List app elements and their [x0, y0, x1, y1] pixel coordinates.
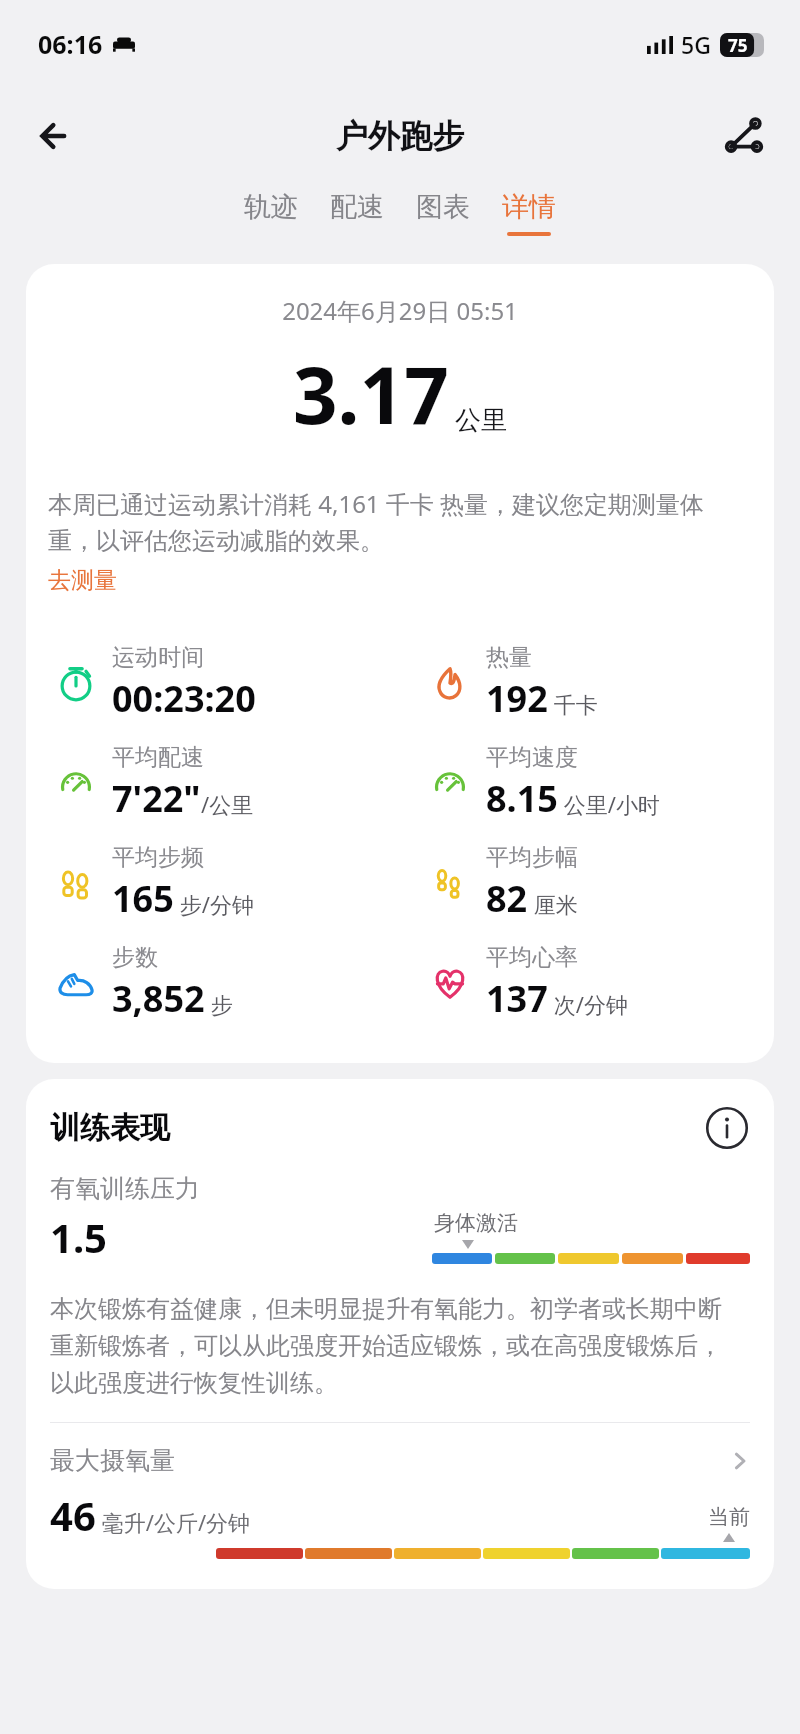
- staticText: 次/分钟: [548, 989, 628, 1019]
- button[interactable]: 图表: [400, 184, 486, 242]
- staticText: /公里: [201, 789, 254, 819]
- staticText: 配速: [330, 190, 384, 224]
- staticText: 平均步频: [112, 843, 204, 872]
- staticText: 3.17: [293, 341, 449, 447]
- staticText: 82: [486, 874, 528, 923]
- staticText: 步数: [112, 943, 158, 972]
- button[interactable]: Back: [22, 102, 90, 170]
- button[interactable]: 运动时间: [26, 633, 400, 733]
- button[interactable]: 平均步频: [26, 833, 400, 933]
- staticText: 运动时间: [112, 643, 204, 672]
- button[interactable]: 平均速度: [400, 733, 774, 833]
- button[interactable]: 轨迹: [228, 184, 314, 242]
- button[interactable]: Share: [712, 104, 776, 168]
- staticText: 00:23:20: [112, 674, 256, 723]
- staticText: 轨迹: [244, 190, 298, 224]
- button[interactable]: 平均步幅: [400, 833, 774, 933]
- staticText: 身体激活: [434, 1210, 518, 1236]
- staticText: 去测量: [48, 566, 117, 595]
- button[interactable]: 步数: [26, 933, 400, 1033]
- button[interactable]: 最大摄氧量: [50, 1445, 750, 1476]
- staticText: 06:16: [38, 27, 103, 61]
- staticText: 千卡: [548, 689, 598, 719]
- button[interactable]: 平均心率: [400, 933, 774, 1033]
- staticText: 平均配速: [112, 743, 204, 772]
- staticText: 公里: [455, 404, 507, 437]
- staticText: 192: [486, 674, 548, 723]
- staticText: 当前: [708, 1504, 750, 1530]
- staticText: 7'22": [112, 774, 201, 823]
- staticText: 户外跑步: [336, 116, 464, 156]
- button[interactable]: Info: [704, 1105, 750, 1151]
- staticText: 步/分钟: [174, 889, 254, 919]
- staticText: 本周已通过运动累计消耗 4,161 千卡 热量，建议您定期测量体 重，以评估您运…: [48, 487, 705, 556]
- button[interactable]: 平均配速: [26, 733, 400, 833]
- staticText: 5G: [681, 29, 711, 60]
- button[interactable]: 热量: [400, 633, 774, 733]
- staticText: 165: [112, 874, 174, 923]
- staticText: 平均步幅: [486, 843, 578, 872]
- button[interactable]: 详情: [486, 184, 572, 242]
- staticText: 毫升/公斤/分钟: [96, 1507, 251, 1537]
- staticText: 有氧训练压力: [50, 1173, 200, 1204]
- staticText: 137: [486, 974, 548, 1023]
- staticText: 本次锻炼有益健康，但未明显提升有氧能力。初学者或长期中断 重新锻炼者，可以从此强…: [50, 1294, 722, 1398]
- staticText: 最大摄氧量: [50, 1445, 175, 1476]
- staticText: 平均心率: [486, 943, 578, 972]
- staticText: 平均速度: [486, 743, 578, 772]
- staticText: 热量: [486, 643, 532, 672]
- staticText: 75: [728, 34, 748, 57]
- button[interactable]: 去测量: [48, 566, 117, 595]
- staticText: 图表: [416, 190, 470, 224]
- staticText: 2024年6月29日 05:51: [26, 294, 774, 327]
- staticText: 厘米: [528, 889, 578, 919]
- staticText: 8.15: [486, 774, 558, 823]
- staticText: 详情: [502, 190, 556, 224]
- staticText: 3,852: [112, 974, 205, 1023]
- staticText: 训练表现: [50, 1109, 170, 1147]
- staticText: 步: [205, 989, 233, 1019]
- staticText: 46: [50, 1488, 96, 1542]
- button[interactable]: 配速: [314, 184, 400, 242]
- staticText: 1.5: [50, 1210, 107, 1264]
- staticText: 公里/小时: [558, 789, 660, 819]
